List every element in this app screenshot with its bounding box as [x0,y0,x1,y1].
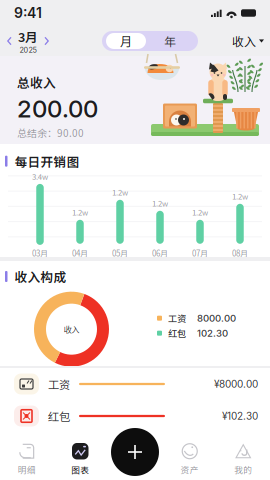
staticText: 总结余：90.00 [17,125,84,140]
staticText: 3月 [18,27,38,46]
staticText: 总收入 [17,73,56,91]
staticText: ¥102.30 [222,410,258,422]
staticText: 200.00 [17,94,98,123]
staticText: 9:41 [14,4,42,21]
staticText: 我的 [234,463,252,476]
staticText: 04月 [72,247,88,259]
button[interactable]: 月 [106,33,146,49]
staticText: 工资 [48,376,70,392]
staticText: 03月 [32,247,48,259]
button[interactable]: 图表 [53,443,107,476]
staticText: 收入 [232,32,256,50]
button[interactable]: 收入 [232,27,264,55]
staticText: 月 [120,32,132,50]
staticText: 05月 [112,247,128,259]
staticText: 1.2w [192,207,208,218]
button[interactable]: 我的 [216,443,270,476]
staticText: 1.2w [72,207,88,218]
button[interactable]: 工资 [0,368,270,400]
staticText: 图表 [71,463,89,476]
staticText: 06月 [152,247,168,259]
button[interactable]: 资产 [163,443,216,476]
staticText: 08月 [232,247,248,259]
staticText: 102.30 [197,327,228,339]
staticText: 3.4w [32,171,48,182]
button[interactable]: Add [111,428,159,476]
staticText: 工资 [168,312,186,325]
staticText: 07月 [192,247,208,259]
staticText: 收入 [63,323,79,335]
staticText: ¥8000.00 [214,378,258,390]
staticText: 2025 [19,46,36,55]
staticText: 8000.00 [197,312,236,324]
staticText: 红包 [48,408,70,424]
staticText: 每日开销图 [14,152,79,170]
staticText: 收入构成 [14,267,66,286]
button[interactable]: 年 [146,33,194,49]
button[interactable]: 红包 [0,400,270,432]
staticText: 1.2w [232,191,248,202]
staticText: 1.2w [112,187,128,198]
staticText: 红包 [168,327,186,340]
button[interactable]: 3月 [6,27,50,55]
button[interactable]: 明细 [0,443,53,476]
staticText: 明细 [18,463,36,476]
staticText: 年 [164,32,176,50]
staticText: 1.2w [152,198,168,209]
staticText: 资产 [181,463,199,476]
